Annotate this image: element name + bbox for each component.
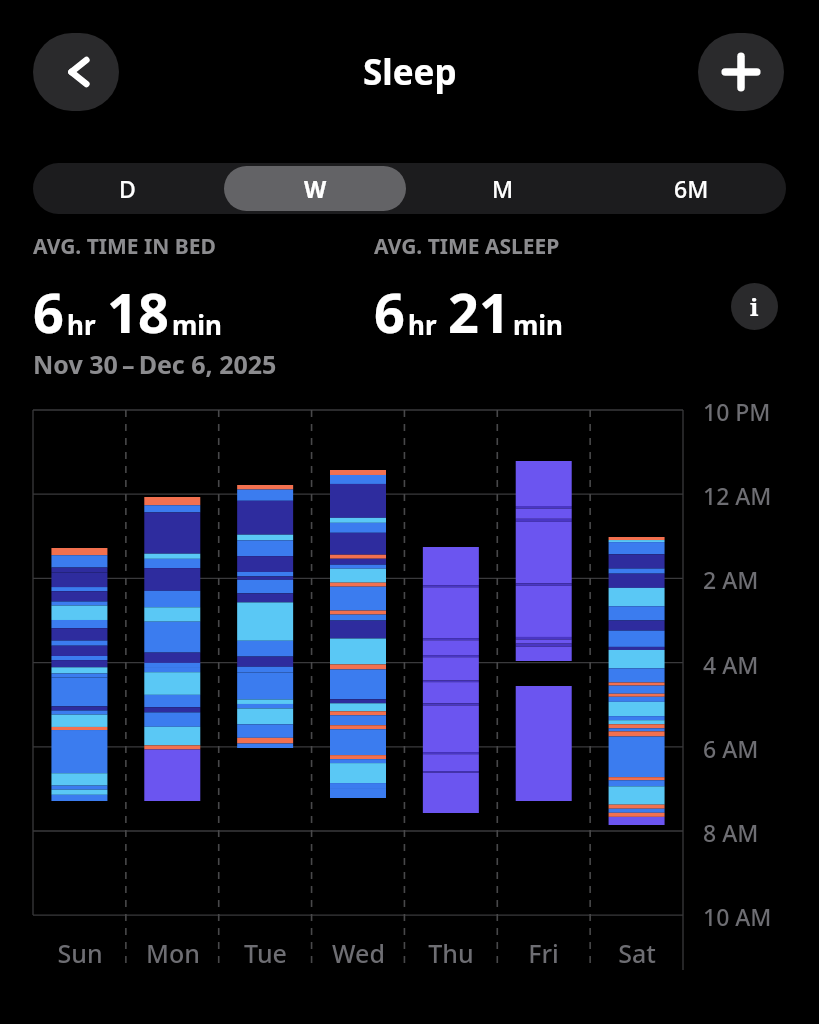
staticText: Wed bbox=[332, 936, 385, 970]
staticText: 6M bbox=[674, 173, 709, 204]
staticText: 8 AM bbox=[703, 817, 759, 848]
staticText: hr bbox=[408, 307, 437, 342]
staticText: AVG. TIME ASLEEP bbox=[374, 232, 560, 261]
button[interactable]: Back bbox=[33, 33, 119, 111]
staticText: i bbox=[750, 290, 759, 323]
staticText: hr bbox=[67, 307, 96, 342]
staticText: 2 AM bbox=[703, 564, 759, 595]
staticText: Sat bbox=[618, 936, 656, 970]
staticText: min bbox=[172, 307, 223, 342]
staticText: 10 PM bbox=[703, 396, 771, 427]
staticText: 6 AM bbox=[703, 733, 759, 764]
staticText: 4 AM bbox=[703, 649, 759, 680]
staticText: Sleep bbox=[363, 48, 457, 96]
staticText: Thu bbox=[428, 936, 474, 970]
staticText: 21 bbox=[448, 275, 510, 349]
button[interactable]: 6M bbox=[597, 163, 785, 214]
button[interactable]: Add sleep data bbox=[698, 33, 784, 111]
staticText: Nov 30 – Dec 6, 2025 bbox=[33, 347, 277, 381]
button[interactable]: W bbox=[221, 163, 409, 214]
button[interactable]: Information bbox=[731, 283, 778, 330]
staticText: Fri bbox=[528, 936, 559, 970]
staticText: AVG. TIME IN BED bbox=[33, 232, 216, 261]
staticText: W bbox=[304, 173, 327, 204]
staticText: Sun bbox=[57, 936, 103, 970]
staticText: 6 bbox=[374, 275, 405, 349]
staticText: Tue bbox=[244, 936, 287, 970]
button[interactable]: D bbox=[33, 163, 221, 214]
staticText: Mon bbox=[146, 936, 200, 970]
button[interactable]: M bbox=[409, 163, 597, 214]
staticText: M bbox=[492, 173, 514, 204]
staticText: D bbox=[119, 173, 136, 204]
staticText: 18 bbox=[107, 275, 169, 349]
staticText: min bbox=[513, 307, 564, 342]
staticText: 12 AM bbox=[703, 480, 772, 511]
staticText: 6 bbox=[33, 275, 64, 349]
staticText: 10 AM bbox=[703, 901, 772, 932]
